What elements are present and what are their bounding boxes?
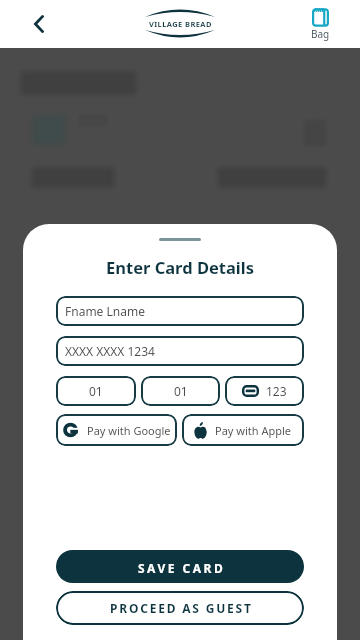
staticText: Fname Lname [65, 303, 145, 319]
button[interactable]: Pay with Google [56, 414, 177, 446]
staticText: 01 [174, 383, 188, 399]
button[interactable]: XXXX XXXX 1234 [56, 336, 304, 366]
staticText: VILLAGE BREAD [149, 19, 212, 29]
staticText: Enter Card Details [106, 256, 254, 278]
button[interactable]: 01 [56, 376, 136, 406]
button[interactable]: Back [25, 10, 53, 38]
staticText: 01 [89, 383, 103, 399]
staticText: PROCEED AS GUEST [110, 600, 253, 616]
button[interactable]: Pay with Apple [182, 414, 304, 446]
button[interactable]: Fname Lname [56, 296, 304, 326]
staticText: Bag [311, 27, 330, 41]
staticText: Pay with Google [87, 423, 171, 438]
button[interactable]: SAVE CARD [56, 550, 304, 583]
button[interactable]: Bag [311, 7, 330, 41]
button[interactable]: 01 [141, 376, 220, 406]
button[interactable]: PROCEED AS GUEST [56, 591, 304, 625]
button[interactable]: 123 [225, 376, 304, 406]
staticText: Pay with Apple [215, 423, 292, 438]
staticText: 123 [266, 383, 287, 399]
staticText: SAVE CARD [138, 560, 226, 576]
staticText: XXXX XXXX 1234 [65, 343, 155, 359]
